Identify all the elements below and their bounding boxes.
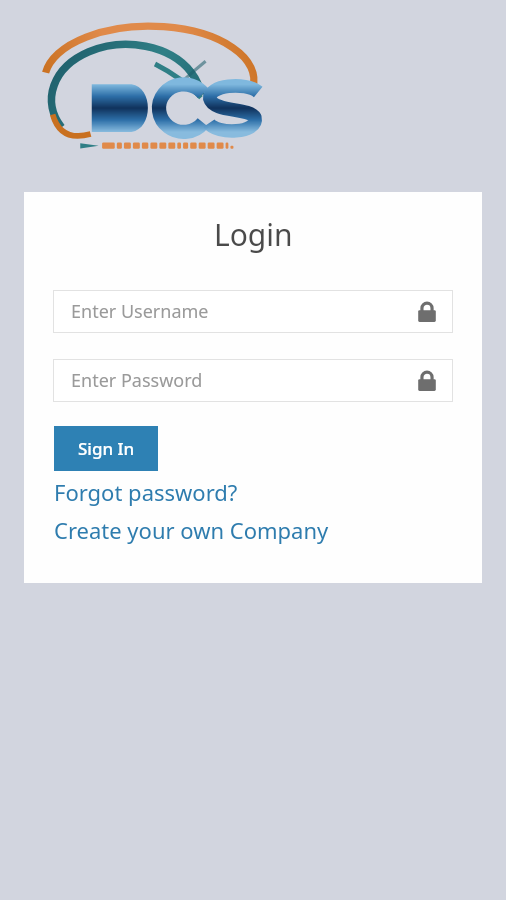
staticText: Enter Username bbox=[71, 299, 209, 324]
staticText: Sign In bbox=[78, 437, 135, 460]
staticText: Forgot password? bbox=[54, 477, 238, 507]
staticText: Create your own Company bbox=[54, 515, 329, 545]
other: Secure field bbox=[409, 363, 445, 399]
staticText: Enter Password bbox=[71, 368, 203, 393]
other: Secure field bbox=[409, 294, 445, 330]
button[interactable]: Sign In bbox=[54, 426, 158, 471]
button[interactable]: Forgot password? bbox=[54, 475, 238, 509]
button[interactable]: Enter Password bbox=[53, 359, 453, 402]
staticText: Login bbox=[214, 214, 293, 255]
button[interactable]: Enter Username bbox=[53, 290, 453, 333]
button[interactable]: Create your own Company bbox=[54, 513, 329, 547]
